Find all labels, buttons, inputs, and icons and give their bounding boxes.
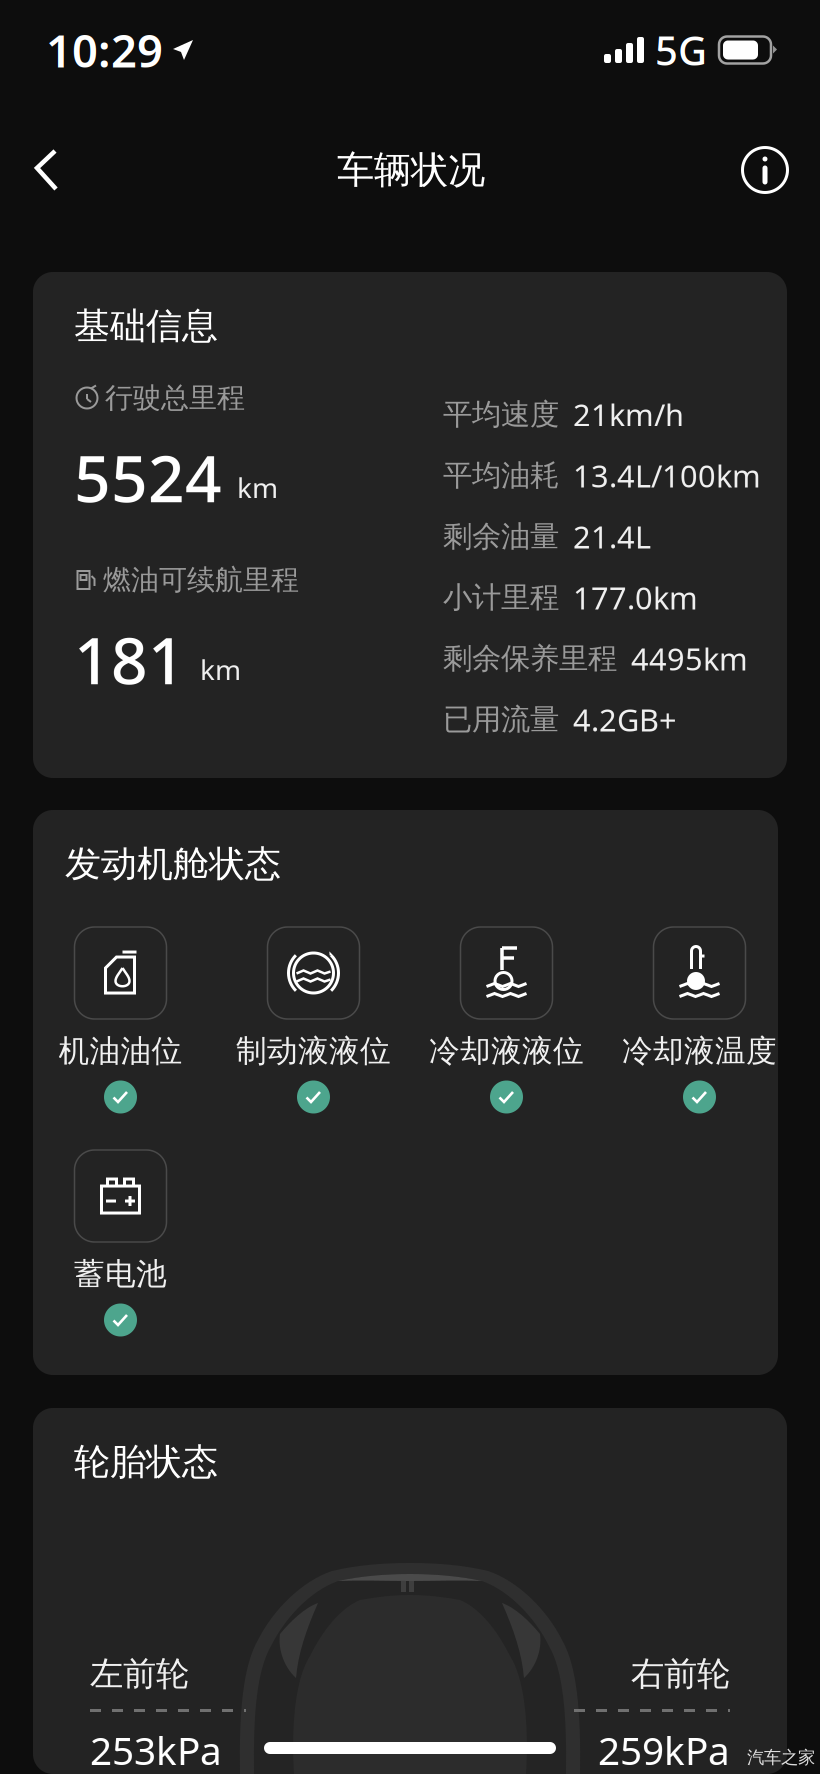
staticText: 21km/h (573, 394, 684, 435)
staticText: 冷却液温度 (622, 1032, 777, 1070)
staticText: 21.4L (573, 516, 651, 557)
staticText: 剩余保养里程 (443, 640, 617, 676)
staticText: 259kPa (598, 1724, 730, 1774)
staticText: 253kPa (90, 1724, 222, 1774)
button[interactable]: Back (34, 130, 106, 210)
button[interactable]: 蓄电池 (24, 1150, 217, 1355)
staticText: 燃油可续航里程 (103, 563, 299, 597)
staticText: 4495km (631, 638, 748, 679)
button[interactable]: 机油油位 (24, 927, 217, 1132)
staticText: 右前轮 (631, 1653, 730, 1694)
button[interactable]: Info (716, 130, 788, 210)
staticText: km (237, 469, 278, 506)
staticText: 车辆状况 (337, 147, 485, 193)
staticText: 4.2GB+ (573, 699, 677, 740)
staticText: 已用流量 (443, 701, 559, 737)
staticText: 蓄电池 (74, 1255, 167, 1293)
staticText: 177.0km (573, 577, 698, 618)
staticText: 汽车之家 (747, 1747, 815, 1768)
staticText: 小计里程 (443, 579, 559, 615)
button[interactable]: 制动液液位 (217, 927, 410, 1132)
staticText: 181 (74, 617, 185, 702)
staticText: 平均速度 (443, 396, 559, 432)
staticText: 发动机舱状态 (65, 842, 281, 886)
staticText: 剩余油量 (443, 518, 559, 554)
staticText: 机油油位 (58, 1032, 182, 1070)
staticText: 13.4L/100km (573, 455, 761, 496)
staticText: 左前轮 (90, 1653, 189, 1694)
staticText: 冷却液液位 (429, 1032, 584, 1070)
staticText: 基础信息 (74, 304, 218, 348)
staticText: 平均油耗 (443, 457, 559, 493)
staticText: 轮胎状态 (74, 1440, 218, 1484)
staticText: 5524 (74, 435, 222, 520)
staticText: 5G (655, 23, 707, 76)
staticText: 行驶总里程 (105, 381, 245, 415)
button[interactable]: 冷却液液位 (410, 927, 603, 1132)
staticText: 制动液液位 (236, 1032, 391, 1070)
staticText: 10:29 (46, 20, 163, 80)
button[interactable]: 冷却液温度 (603, 927, 796, 1132)
staticText: km (200, 651, 241, 688)
